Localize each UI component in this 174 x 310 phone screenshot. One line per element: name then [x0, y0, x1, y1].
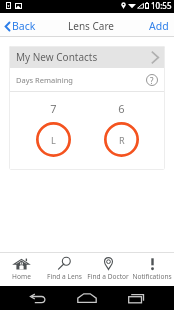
- staticText: R: [119, 134, 125, 146]
- button[interactable]: 7: [35, 92, 71, 157]
- button[interactable]: Home: [0, 253, 43, 286]
- staticText: Lens Care: [68, 19, 114, 33]
- button[interactable]: Notifications: [130, 253, 174, 286]
- button[interactable]: Find a Doctor: [86, 253, 130, 286]
- staticText: 6: [118, 101, 125, 116]
- staticText: Home: [12, 272, 31, 281]
- staticText: 10:55: [151, 0, 172, 11]
- button[interactable]: Home: [76, 287, 98, 309]
- button[interactable]: Help: [146, 74, 158, 86]
- staticText: Days Remaining: [16, 75, 73, 85]
- button[interactable]: Recents: [125, 287, 147, 309]
- staticText: Find a Doctor: [87, 272, 129, 281]
- staticText: My New Contacts: [16, 50, 98, 64]
- staticText: L: [51, 134, 56, 146]
- button[interactable]: 6: [103, 92, 139, 157]
- button[interactable]: My New Contacts: [9, 46, 165, 68]
- staticText: Back: [12, 19, 36, 33]
- button[interactable]: Find a Lens: [43, 253, 86, 286]
- button[interactable]: Back: [0, 15, 41, 37]
- staticText: Find a Lens: [47, 272, 82, 281]
- button[interactable]: Add: [141, 15, 174, 37]
- staticText: ?: [150, 75, 154, 86]
- staticText: Notifications: [132, 272, 172, 281]
- staticText: Add: [149, 19, 169, 33]
- staticText: 7: [50, 101, 57, 116]
- button[interactable]: Back: [27, 287, 49, 309]
